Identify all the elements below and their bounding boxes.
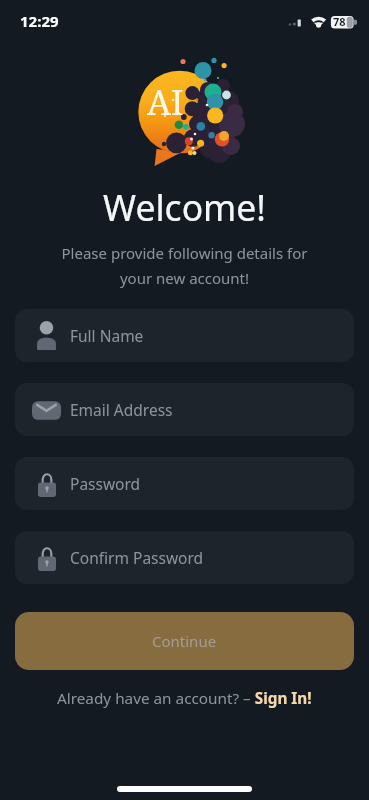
staticText: 78 <box>333 14 346 29</box>
button[interactable]: Password <box>15 457 354 510</box>
staticText: Please provide following details for you… <box>0 243 369 288</box>
button[interactable]: Full Name <box>15 309 354 362</box>
button[interactable]: Continue <box>15 612 354 670</box>
staticText: Password <box>70 473 141 494</box>
staticText: Email Address <box>70 399 173 420</box>
staticText: Full Name <box>70 325 144 346</box>
staticText: 12:29 <box>20 11 59 31</box>
staticText: AI <box>147 79 184 125</box>
button[interactable]: Confirm Password <box>15 531 354 584</box>
button[interactable]: Already have an account? – Sign In! <box>57 688 312 709</box>
staticText: Continue <box>152 631 217 651</box>
staticText: Welcome! <box>0 183 369 231</box>
button[interactable]: Email Address <box>15 383 354 436</box>
staticText: Confirm Password <box>70 547 204 568</box>
